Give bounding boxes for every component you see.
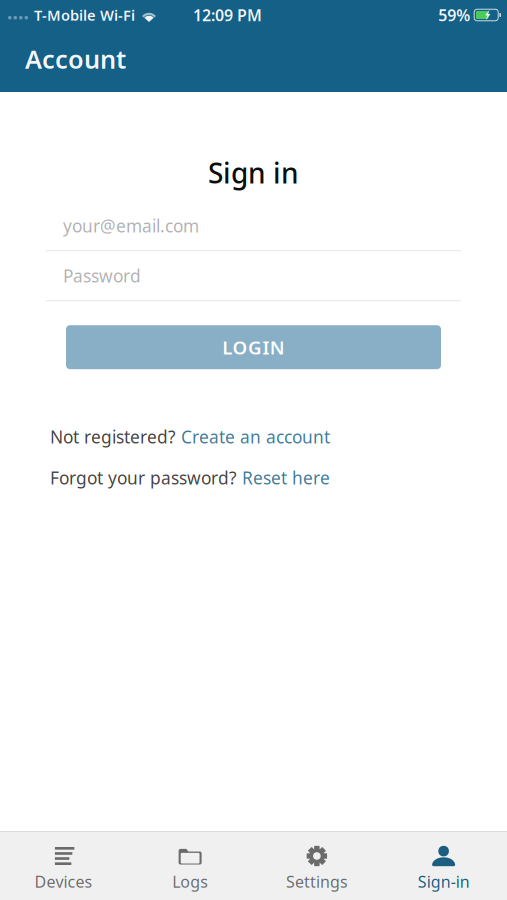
staticText: Devices <box>34 871 92 892</box>
staticText: Reset here <box>242 466 330 489</box>
button[interactable]: LOGIN <box>66 325 441 369</box>
staticText: T-Mobile Wi-Fi <box>34 5 135 25</box>
staticText: Sign in <box>208 154 299 191</box>
button[interactable]: Forgot your password? <box>50 466 461 489</box>
staticText: 12:09 PM <box>193 4 262 26</box>
staticText: Logs <box>172 871 208 892</box>
staticText: Settings <box>286 871 348 892</box>
button[interactable]: Devices <box>0 832 127 900</box>
staticText: Account <box>25 42 126 76</box>
staticText: Create an account <box>181 425 330 448</box>
staticText: Password <box>63 264 141 287</box>
button[interactable]: Sign-in <box>380 832 507 900</box>
button[interactable]: Not registered? <box>50 425 461 448</box>
staticText: 59% <box>438 4 470 26</box>
staticText: LOGIN <box>222 335 285 360</box>
staticText: Not registered? <box>50 425 181 448</box>
staticText: your@email.com <box>63 214 199 237</box>
button[interactable]: Logs <box>127 832 254 900</box>
staticText: Forgot your password? <box>50 466 242 489</box>
staticText: Sign-in <box>418 871 470 892</box>
button[interactable]: Settings <box>253 832 380 900</box>
